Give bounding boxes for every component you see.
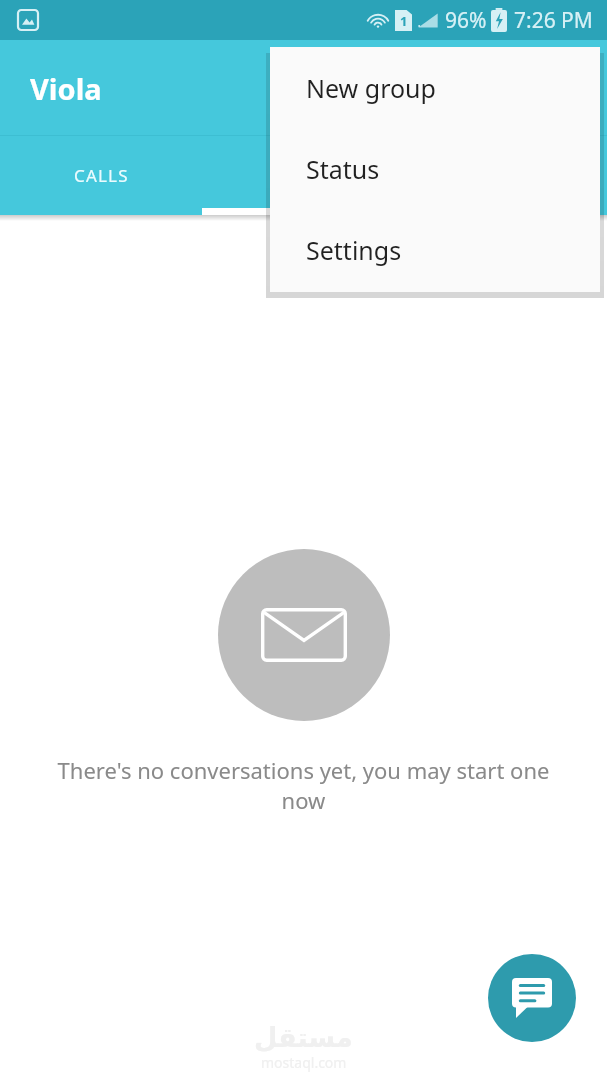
staticText: 7:26 PM <box>514 6 593 35</box>
button[interactable]: Settings <box>270 209 600 290</box>
staticText: mostaql.com <box>261 1053 347 1072</box>
staticText: 1 <box>400 12 408 30</box>
button[interactable]: Status <box>270 128 600 209</box>
button[interactable]: CALLS <box>0 136 203 215</box>
staticText: Viola <box>30 69 102 108</box>
button[interactable]: New group <box>270 47 600 128</box>
staticText: CHATS <box>275 164 333 187</box>
staticText: مستقل <box>254 1022 353 1053</box>
staticText: Status <box>306 152 380 186</box>
staticText: New group <box>306 71 436 105</box>
staticText: Settings <box>306 233 402 267</box>
staticText: 96% <box>445 6 487 35</box>
staticText: There's no conversations yet, you may st… <box>34 755 573 815</box>
button[interactable]: CHATS <box>203 136 405 215</box>
button[interactable]: CONTACTS <box>405 136 607 215</box>
staticText: CALLS <box>74 164 129 187</box>
button[interactable]: New conversation <box>488 954 576 1042</box>
